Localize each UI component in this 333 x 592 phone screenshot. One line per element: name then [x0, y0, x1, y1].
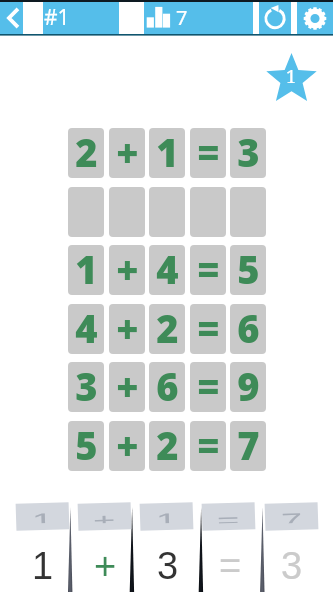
- button[interactable]: +: [109, 421, 145, 471]
- staticText: +: [94, 545, 117, 587]
- button[interactable]: 9: [230, 362, 266, 412]
- button[interactable]: 4: [149, 245, 185, 295]
- staticText: 6: [237, 304, 260, 352]
- staticText: =: [217, 509, 240, 523]
- staticText: 1: [75, 245, 98, 293]
- button[interactable]: +: [109, 304, 145, 354]
- staticText: =: [197, 128, 220, 176]
- staticText: 1: [286, 64, 297, 89]
- staticText: 7: [281, 509, 303, 523]
- button[interactable]: =: [202, 502, 255, 531]
- button[interactable]: [68, 187, 104, 237]
- button[interactable]: 2: [149, 421, 185, 471]
- staticText: 7: [176, 4, 188, 31]
- button[interactable]: =: [190, 421, 226, 471]
- button[interactable]: [149, 187, 185, 237]
- staticText: +: [116, 421, 139, 469]
- staticText: +: [93, 509, 116, 523]
- button[interactable]: 3: [230, 128, 266, 178]
- button[interactable]: +: [109, 245, 145, 295]
- button[interactable]: [230, 187, 266, 237]
- button[interactable]: 1: [68, 245, 104, 295]
- staticText: 4: [156, 245, 179, 293]
- button[interactable]: Restart: [259, 2, 291, 34]
- button[interactable]: [190, 187, 226, 237]
- button[interactable]: =: [190, 245, 226, 295]
- button[interactable]: 1: [16, 502, 69, 531]
- staticText: 1: [32, 509, 54, 523]
- button[interactable]: +: [78, 502, 131, 531]
- button[interactable]: 7: [144, 2, 253, 34]
- button[interactable]: =: [190, 304, 226, 354]
- staticText: 1: [32, 545, 54, 587]
- button[interactable]: 5: [230, 245, 266, 295]
- staticText: 9: [237, 362, 260, 410]
- staticText: +: [116, 304, 139, 352]
- button[interactable]: =: [190, 128, 226, 178]
- staticText: =: [197, 304, 220, 352]
- staticText: 2: [75, 128, 98, 176]
- staticText: +: [116, 245, 139, 293]
- button[interactable]: 6: [230, 304, 266, 354]
- button[interactable]: 6: [149, 362, 185, 412]
- button[interactable]: 1: [140, 502, 193, 531]
- button[interactable]: +: [109, 362, 145, 412]
- button[interactable]: 3: [140, 543, 196, 589]
- staticText: =: [197, 245, 220, 293]
- staticText: 1: [156, 509, 178, 523]
- staticText: =: [219, 545, 242, 587]
- button[interactable]: Level 1 star: [265, 53, 318, 103]
- button[interactable]: 2: [68, 128, 104, 178]
- staticText: 7: [237, 421, 260, 469]
- button[interactable]: 5: [68, 421, 104, 471]
- staticText: 1: [156, 128, 179, 176]
- button[interactable]: #1: [43, 2, 119, 34]
- button[interactable]: 1: [15, 543, 71, 589]
- staticText: 6: [156, 362, 179, 410]
- button[interactable]: 7: [230, 421, 266, 471]
- button[interactable]: +: [109, 128, 145, 178]
- button[interactable]: 7: [265, 502, 318, 531]
- button[interactable]: =: [202, 543, 258, 589]
- staticText: 3: [157, 545, 179, 587]
- button[interactable]: 1: [149, 128, 185, 178]
- staticText: 3: [281, 545, 303, 587]
- staticText: 2: [156, 421, 179, 469]
- button[interactable]: 3: [68, 362, 104, 412]
- staticText: 5: [75, 421, 98, 469]
- staticText: =: [197, 421, 220, 469]
- staticText: 5: [237, 245, 260, 293]
- staticText: 3: [75, 362, 98, 410]
- button[interactable]: Back: [0, 2, 23, 34]
- button[interactable]: +: [77, 543, 133, 589]
- button[interactable]: 3: [264, 543, 320, 589]
- button[interactable]: [109, 187, 145, 237]
- staticText: #1: [44, 3, 70, 32]
- staticText: +: [116, 128, 139, 176]
- button[interactable]: 2: [149, 304, 185, 354]
- button[interactable]: 4: [68, 304, 104, 354]
- staticText: +: [116, 362, 139, 410]
- button[interactable]: Settings: [297, 2, 333, 34]
- staticText: 3: [237, 128, 260, 176]
- staticText: =: [197, 362, 220, 410]
- button[interactable]: =: [190, 362, 226, 412]
- staticText: 2: [156, 304, 179, 352]
- staticText: 4: [75, 304, 98, 352]
